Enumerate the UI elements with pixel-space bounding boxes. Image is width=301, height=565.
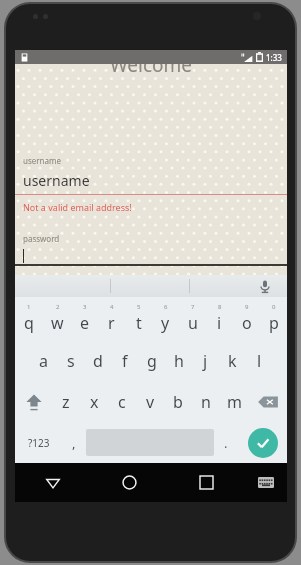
button[interactable]: Change keyboard: [245, 463, 287, 502]
button[interactable]: ?123: [15, 422, 62, 463]
button[interactable]: v: [136, 381, 164, 422]
staticText: o: [242, 312, 252, 334]
button[interactable]: j: [192, 340, 219, 381]
staticText: password: [23, 233, 60, 244]
staticText: 1:33: [266, 52, 282, 63]
button[interactable]: 1: [15, 297, 43, 340]
staticText: 4: [110, 303, 114, 311]
button[interactable]: b: [164, 381, 192, 422]
staticText: j: [203, 350, 208, 372]
button[interactable]: c: [108, 381, 136, 422]
staticText: s: [67, 350, 75, 372]
staticText: k: [228, 350, 237, 372]
staticText: 5: [137, 303, 141, 311]
staticText: x: [90, 391, 99, 413]
staticText: 1: [27, 303, 31, 311]
button[interactable]: Back: [15, 463, 91, 502]
staticText: 3: [83, 303, 87, 311]
staticText: a: [39, 350, 48, 372]
staticText: ?123: [28, 436, 50, 450]
button[interactable]: d: [84, 340, 111, 381]
button[interactable]: Shift: [15, 381, 52, 422]
staticText: r: [108, 312, 115, 334]
button[interactable]: k: [219, 340, 246, 381]
button[interactable]: [15, 248, 287, 264]
staticText: 2: [56, 303, 60, 311]
staticText: 8: [218, 303, 222, 311]
button[interactable]: Backspace: [248, 381, 287, 422]
staticText: y: [161, 312, 170, 334]
button[interactable]: f: [111, 340, 138, 381]
button[interactable]: Home: [91, 463, 168, 502]
button[interactable]: 3: [71, 297, 98, 340]
button[interactable]: .: [214, 422, 238, 463]
button[interactable]: 9: [233, 297, 260, 340]
button[interactable]: Recents: [168, 463, 245, 502]
button[interactable]: n: [192, 381, 220, 422]
button[interactable]: username: [15, 171, 287, 190]
button[interactable]: h: [165, 340, 192, 381]
button[interactable]: 4: [98, 297, 125, 340]
staticText: w: [51, 312, 64, 334]
staticText: f: [122, 350, 128, 372]
staticText: c: [118, 391, 126, 413]
staticText: Not a valid email address!: [23, 201, 132, 213]
staticText: username: [23, 171, 90, 190]
staticText: e: [80, 312, 90, 334]
button[interactable]: Voice input: [255, 276, 275, 296]
staticText: 9: [245, 303, 249, 311]
staticText: i: [217, 312, 222, 334]
button[interactable]: 5: [125, 297, 152, 340]
staticText: g: [147, 350, 157, 372]
button[interactable]: ,: [62, 422, 86, 463]
button[interactable]: 2: [43, 297, 71, 340]
button[interactable]: x: [80, 381, 108, 422]
staticText: username: [23, 155, 62, 166]
staticText: t: [136, 312, 142, 334]
staticText: u: [188, 312, 198, 334]
button[interactable]: 6: [152, 297, 179, 340]
button[interactable]: g: [138, 340, 165, 381]
staticText: z: [62, 391, 70, 413]
staticText: p: [269, 312, 279, 334]
button[interactable]: m: [220, 381, 248, 422]
staticText: ,: [72, 434, 76, 452]
button[interactable]: 0: [260, 297, 287, 340]
staticText: .: [224, 434, 228, 452]
staticText: 7: [191, 303, 195, 311]
staticText: 0: [272, 303, 276, 311]
button[interactable]: z: [52, 381, 80, 422]
button[interactable]: Done: [248, 428, 278, 458]
button[interactable]: 8: [206, 297, 233, 340]
staticText: 6: [164, 303, 168, 311]
staticText: v: [146, 391, 155, 413]
staticText: Welcome: [15, 52, 287, 78]
button[interactable]: 7: [179, 297, 206, 340]
button[interactable]: s: [57, 340, 84, 381]
button[interactable]: l: [246, 340, 273, 381]
button[interactable]: a: [30, 340, 57, 381]
staticText: b: [173, 391, 183, 413]
staticText: d: [93, 350, 103, 372]
staticText: q: [24, 312, 34, 334]
staticText: n: [201, 391, 211, 413]
staticText: h: [174, 350, 184, 372]
staticText: m: [227, 391, 242, 413]
staticText: l: [257, 350, 262, 372]
